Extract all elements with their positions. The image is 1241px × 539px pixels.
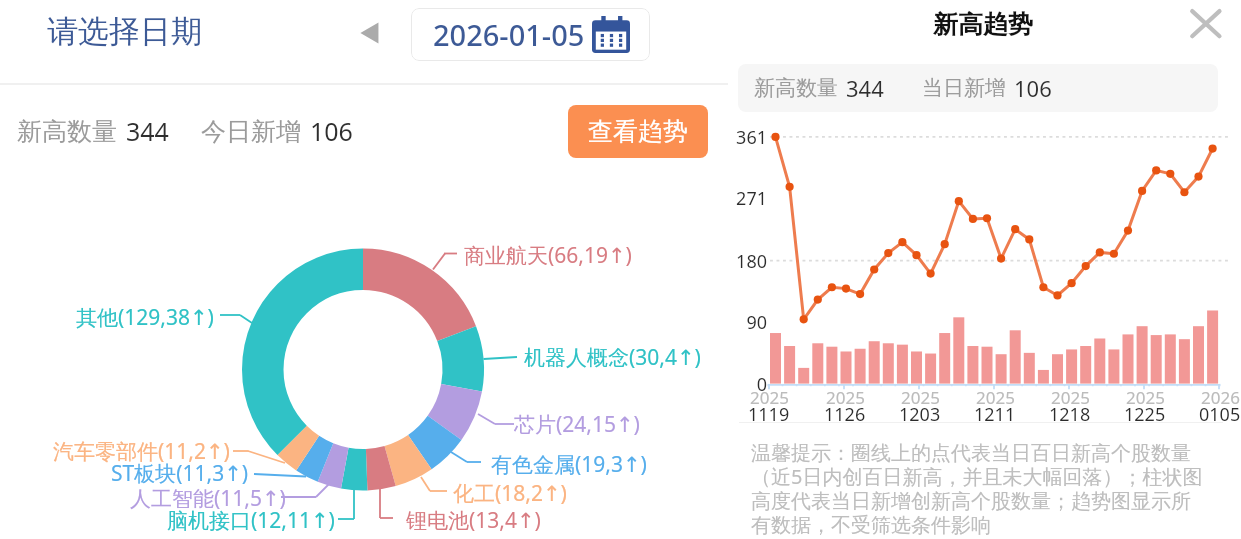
button[interactable]: Close	[1184, 3, 1228, 47]
staticText: 其他(129,38↑)	[76, 303, 214, 332]
staticText: 0	[756, 372, 767, 397]
staticText: 有色金属(19,3↑)	[491, 450, 647, 479]
staticText: 新高数量	[754, 75, 838, 101]
staticText: 查看趋势	[588, 116, 688, 147]
staticText: 锂电池(13,4↑)	[406, 506, 541, 535]
staticText: 温馨提示：圈线上的点代表当日百日新高个股数量（近5日内创百日新高，并且未大幅回落…	[751, 441, 1208, 537]
staticText: 180	[736, 249, 767, 274]
staticText: 2025	[1126, 386, 1165, 409]
staticText: 1225	[1124, 402, 1166, 427]
staticText: 2025	[750, 386, 789, 409]
staticText: 106	[1014, 73, 1052, 103]
staticText: 1211	[974, 402, 1016, 427]
staticText: 请选择日期	[47, 12, 202, 51]
staticText: 商业航天(66,19↑)	[464, 241, 632, 270]
staticText: 当日新增	[922, 75, 1006, 101]
staticText: 2025	[976, 386, 1015, 409]
staticText: 344	[846, 73, 884, 103]
staticText: 271	[736, 186, 767, 211]
staticText: 汽车零部件(11,2↑)	[53, 437, 230, 466]
staticText: 化工(18,2↑)	[453, 479, 567, 508]
staticText: 新高数量	[17, 116, 117, 147]
staticText: 2025	[1051, 386, 1090, 409]
staticText: 2025	[901, 386, 940, 409]
staticText: ST板块(11,3↑)	[111, 459, 249, 488]
staticText: 芯片(24,15↑)	[514, 410, 640, 439]
button[interactable]: 查看趋势	[568, 105, 708, 158]
staticText: 人工智能(11,5↑)	[130, 484, 286, 513]
staticText: 1203	[899, 402, 941, 427]
staticText: 新高趋势	[933, 9, 1033, 40]
staticText: 机器人概念(30,4↑)	[524, 343, 701, 372]
staticText: 106	[310, 114, 353, 148]
button[interactable]: 2026-01-05	[411, 8, 650, 61]
staticText: 1119	[748, 402, 790, 427]
staticText: 90	[746, 310, 767, 335]
staticText: 脑机接口(12,11↑)	[167, 506, 335, 535]
staticText: 0105	[1199, 402, 1241, 427]
staticText: 今日新增	[201, 116, 301, 147]
staticText: 2026-01-05	[433, 15, 585, 54]
button[interactable]: Previous day	[352, 12, 394, 54]
staticText: 361	[736, 125, 767, 150]
staticText: 1218	[1049, 402, 1091, 427]
staticText: 2026	[1201, 386, 1240, 409]
staticText: 1126	[824, 402, 866, 427]
staticText: 2025	[826, 386, 865, 409]
staticText: 344	[126, 114, 169, 148]
